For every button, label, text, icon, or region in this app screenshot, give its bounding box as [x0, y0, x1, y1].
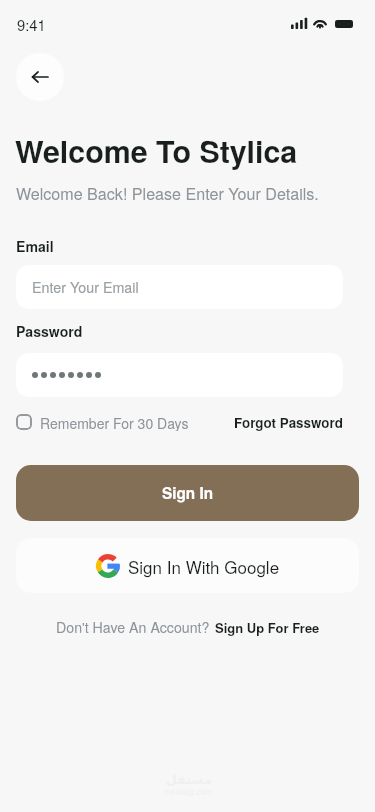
staticText: Don't Have An Account?	[56, 617, 210, 637]
button[interactable]: Sign In	[16, 465, 359, 521]
staticText: Welcome To Stylica	[15, 129, 298, 173]
button[interactable]: Sign Up For Free	[215, 618, 320, 637]
button[interactable]: Back	[16, 53, 64, 101]
button[interactable]: Sign In With Google	[16, 538, 359, 593]
staticText: Password	[16, 321, 83, 341]
staticText: Remember For 30 Days	[40, 413, 189, 431]
button[interactable]: Remember For 30 Days	[16, 413, 189, 431]
button[interactable]: Forgot Password	[234, 413, 343, 431]
staticText: Sign Up For Free	[215, 618, 320, 637]
button[interactable]	[16, 353, 343, 397]
staticText: Enter Your Email	[32, 277, 139, 297]
staticText: Email	[16, 236, 54, 256]
staticText: Welcome Back! Please Enter Your Details.	[16, 182, 319, 205]
staticText: 9:41	[17, 14, 46, 35]
staticText: Sign In	[162, 482, 214, 504]
button[interactable]: Enter Your Email	[16, 265, 343, 309]
staticText: Sign In With Google	[128, 554, 280, 578]
staticText: Forgot Password	[234, 413, 343, 431]
